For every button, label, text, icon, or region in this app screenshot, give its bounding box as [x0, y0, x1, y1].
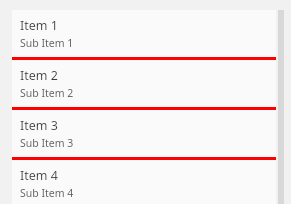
- staticText: Item 1: [20, 17, 58, 34]
- staticText: Sub Item 1: [20, 36, 74, 50]
- button[interactable]: Item 3: [12, 110, 276, 160]
- staticText: Sub Item 2: [20, 86, 74, 100]
- button[interactable]: Item 1: [12, 10, 276, 60]
- staticText: Item 3: [20, 117, 58, 134]
- staticText: Item 4: [20, 167, 58, 184]
- staticText: Sub Item 3: [20, 136, 74, 150]
- button[interactable]: Item 2: [12, 60, 276, 110]
- staticText: Sub Item 4: [20, 186, 74, 200]
- button[interactable]: Item 4: [12, 160, 276, 204]
- staticText: Item 2: [20, 67, 58, 84]
